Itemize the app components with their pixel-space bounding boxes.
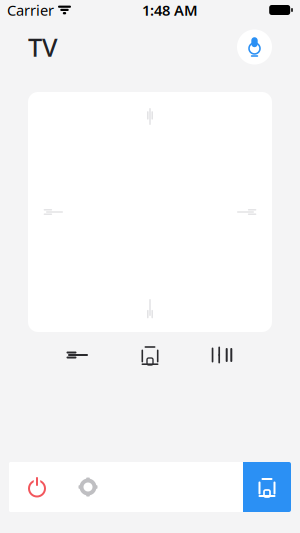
- staticText: TV: [28, 30, 58, 64]
- staticText: 1:48 AM: [142, 0, 198, 20]
- button[interactable]: Settings: [65, 462, 111, 512]
- button[interactable]: Home screen: [243, 462, 291, 512]
- button[interactable]: Power: [9, 462, 65, 512]
- button[interactable]: Voice search: [237, 29, 272, 64]
- button[interactable]: Play or pause: [186, 332, 258, 378]
- button[interactable]: Home: [114, 332, 186, 378]
- button[interactable]: Back: [42, 332, 114, 378]
- staticText: Carrier: [7, 0, 54, 20]
